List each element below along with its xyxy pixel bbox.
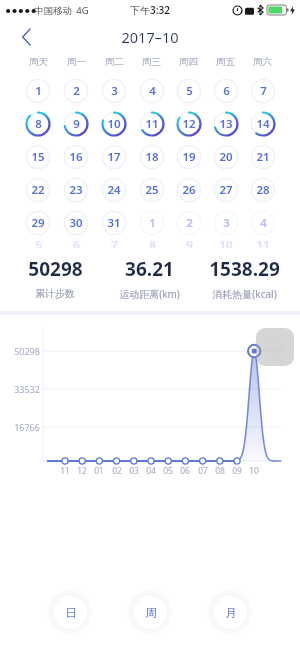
staticText: 4 — [149, 83, 156, 99]
button[interactable]: 13 — [207, 107, 244, 140]
staticText: 02 — [112, 465, 122, 477]
button[interactable]: 18 — [133, 140, 170, 173]
staticText: 周天 — [29, 56, 48, 68]
button[interactable]: 30 — [57, 206, 95, 239]
staticText: 6 — [73, 239, 80, 248]
staticText: 18 — [145, 149, 159, 165]
staticText: 3 — [223, 215, 230, 231]
button[interactable]: 6 — [57, 239, 95, 248]
staticText: 29 — [31, 215, 45, 231]
button[interactable]: Back — [10, 21, 42, 53]
button[interactable]: 11 — [133, 107, 170, 140]
button[interactable]: 周 — [134, 596, 167, 629]
button[interactable]: 20 — [207, 140, 244, 173]
staticText: 12 — [77, 465, 87, 477]
staticText: 16766 — [14, 421, 40, 433]
staticText: 1 — [35, 83, 42, 99]
staticText: 10 — [219, 239, 233, 248]
button[interactable]: 28 — [244, 173, 281, 206]
staticText: 27 — [219, 182, 233, 198]
staticText: 05 — [163, 465, 173, 477]
button[interactable]: 21 — [244, 140, 281, 173]
staticText: 01 — [94, 465, 104, 477]
staticText: 月 — [225, 606, 237, 620]
button[interactable]: 27 — [207, 173, 244, 206]
staticText: 9 — [73, 116, 80, 132]
staticText: 2 — [186, 215, 193, 231]
staticText: 5 — [186, 83, 193, 99]
staticText: 10 — [249, 465, 259, 477]
button[interactable]: 29 — [19, 206, 57, 239]
staticText: 中国移动 — [34, 5, 72, 17]
staticText: 消耗热量(kcal) — [212, 287, 277, 301]
staticText: 1538.29 — [209, 256, 280, 282]
button[interactable]: 3 — [207, 206, 244, 239]
button[interactable]: 1 — [19, 74, 57, 107]
button[interactable]: 10 — [95, 107, 133, 140]
button[interactable]: 10 — [207, 239, 244, 248]
button[interactable]: 2 — [170, 206, 207, 239]
staticText: 26 — [182, 182, 196, 198]
staticText: 22 — [31, 182, 45, 198]
staticText: 周四 — [179, 56, 198, 68]
button[interactable]: 1 — [133, 206, 170, 239]
button[interactable]: 22 — [19, 173, 57, 206]
staticText: 07 — [198, 465, 208, 477]
staticText: 周 — [145, 606, 157, 620]
button[interactable]: 26 — [170, 173, 207, 206]
staticText: 14 — [256, 116, 270, 132]
button[interactable]: 1538.29 — [197, 256, 292, 301]
staticText: 运动距离(km) — [119, 287, 180, 301]
button[interactable]: 7 — [95, 239, 133, 248]
staticText: 20 — [219, 149, 233, 165]
button[interactable]: 8 — [133, 239, 170, 248]
button[interactable]: 19 — [170, 140, 207, 173]
button[interactable]: 9 — [170, 239, 207, 248]
button[interactable]: 7 — [244, 74, 281, 107]
button[interactable]: 5 — [170, 74, 207, 107]
button[interactable]: 2 — [57, 74, 95, 107]
staticText: 24 — [107, 182, 121, 198]
button[interactable]: 3 — [95, 74, 133, 107]
staticText: 31 — [107, 215, 121, 231]
staticText: 周六 — [253, 56, 272, 68]
staticText: 13 — [219, 116, 233, 132]
button[interactable]: 50298 — [8, 256, 102, 300]
staticText: 03 — [129, 465, 139, 477]
button[interactable]: 8 — [19, 107, 57, 140]
button[interactable]: AssistiveTouch — [256, 328, 294, 366]
button[interactable]: 25 — [133, 173, 170, 206]
staticText: 下午3:32 — [130, 3, 170, 17]
staticText: 21 — [256, 149, 270, 165]
staticText: 04 — [146, 465, 156, 477]
button[interactable]: 36.21 — [102, 256, 197, 301]
staticText: 11 — [60, 465, 70, 477]
button[interactable]: 16 — [57, 140, 95, 173]
staticText: 33532 — [14, 383, 40, 395]
button[interactable]: 17 — [95, 140, 133, 173]
button[interactable]: 日 — [54, 596, 87, 629]
button[interactable]: 15 — [19, 140, 57, 173]
button[interactable]: 23 — [57, 173, 95, 206]
staticText: 6 — [223, 83, 230, 99]
button[interactable]: 11 — [244, 239, 281, 248]
staticText: 周三 — [142, 56, 161, 68]
staticText: 11 — [256, 239, 270, 248]
button[interactable]: 12 — [170, 107, 207, 140]
button[interactable]: 9 — [57, 107, 95, 140]
button[interactable]: 4 — [133, 74, 170, 107]
staticText: 8 — [149, 239, 156, 248]
button[interactable]: 6 — [207, 74, 244, 107]
staticText: 16 — [69, 149, 83, 165]
button[interactable]: 24 — [95, 173, 133, 206]
button[interactable]: 5 — [19, 239, 57, 248]
button[interactable]: 31 — [95, 206, 133, 239]
staticText: 7 — [260, 83, 267, 99]
staticText: 25 — [145, 182, 159, 198]
button[interactable]: 4 — [244, 206, 281, 239]
staticText: 周一 — [67, 56, 86, 68]
staticText: 09 — [232, 465, 242, 477]
button[interactable]: 14 — [244, 107, 281, 140]
button[interactable]: 月 — [214, 596, 247, 629]
staticText: 3 — [111, 83, 118, 99]
